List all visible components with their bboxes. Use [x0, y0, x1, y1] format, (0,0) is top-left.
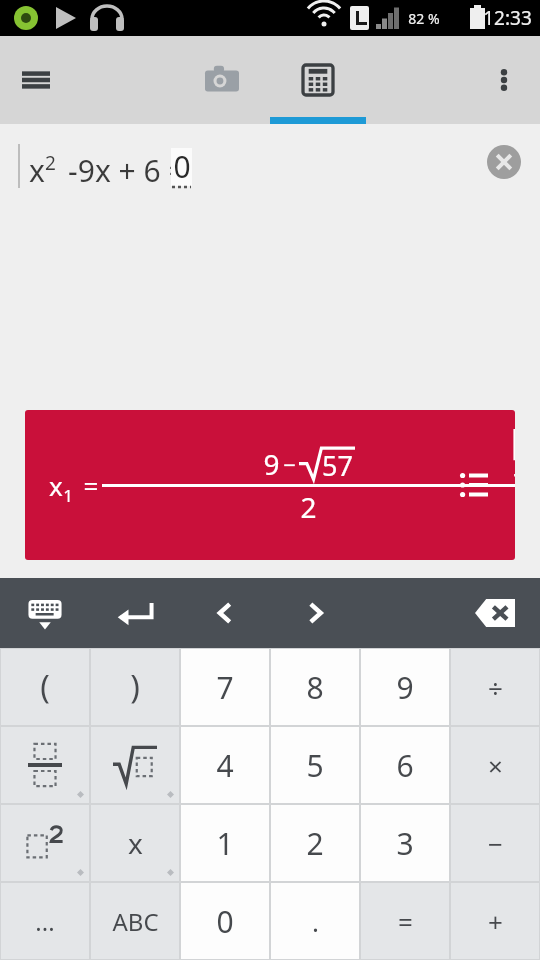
staticText: 2: [300, 488, 317, 526]
staticText: −: [488, 826, 503, 861]
button[interactable]: 0: [181, 883, 269, 959]
staticText: −: [283, 449, 296, 479]
button[interactable]: +: [451, 883, 539, 959]
staticText: 1: [63, 484, 73, 507]
staticText: ): [130, 665, 140, 709]
button[interactable]: Clear: [476, 134, 532, 190]
button[interactable]: 1: [181, 805, 269, 881]
button[interactable]: 4: [181, 727, 269, 803]
button[interactable]: Backspace: [466, 584, 524, 642]
button[interactable]: [91, 727, 179, 803]
button[interactable]: ×: [451, 727, 539, 803]
button[interactable]: ABC: [91, 883, 179, 959]
button[interactable]: [1, 727, 89, 803]
staticText: 3: [396, 823, 414, 864]
staticText: 57: [322, 447, 353, 484]
button[interactable]: 2: [271, 805, 359, 881]
staticText: 0: [216, 901, 234, 942]
button[interactable]: 5: [271, 727, 359, 803]
staticText: 8: [306, 667, 324, 708]
button[interactable]: Hide keyboard: [16, 584, 74, 642]
button[interactable]: Camera: [186, 44, 258, 116]
staticText: 5: [306, 745, 324, 786]
staticText: -9x + 6 =: [56, 150, 190, 191]
staticText: ...: [35, 905, 55, 938]
staticText: ABC: [112, 905, 159, 938]
staticText: 82 %: [408, 9, 440, 28]
button[interactable]: ...: [1, 883, 89, 959]
button[interactable]: 6: [361, 727, 449, 803]
button[interactable]: More options: [468, 44, 540, 116]
staticText: 2: [45, 150, 56, 176]
button[interactable]: .: [271, 883, 359, 959]
button[interactable]: 8: [271, 649, 359, 725]
staticText: =: [398, 904, 413, 939]
staticText: 6: [396, 745, 414, 786]
button[interactable]: Move left: [196, 584, 254, 642]
staticText: x: [49, 468, 63, 503]
staticText: .: [312, 904, 319, 939]
button[interactable]: x: [91, 805, 179, 881]
staticText: 12:33: [483, 5, 532, 31]
staticText: x: [128, 824, 143, 862]
staticText: =: [73, 468, 102, 503]
staticText: 4: [216, 745, 234, 786]
button[interactable]: Enter: [106, 584, 164, 642]
button[interactable]: [1, 805, 89, 881]
button[interactable]: (: [1, 649, 89, 725]
button[interactable]: ÷: [451, 649, 539, 725]
staticText: 9: [396, 667, 414, 708]
button[interactable]: Show steps: [447, 458, 501, 512]
button[interactable]: Menu: [0, 44, 72, 116]
staticText: 1: [216, 823, 234, 864]
button[interactable]: ): [91, 649, 179, 725]
button[interactable]: x: [25, 410, 515, 560]
button[interactable]: 7: [181, 649, 269, 725]
button[interactable]: Move right: [286, 584, 344, 642]
staticText: 9: [263, 445, 280, 483]
staticText: 0: [173, 146, 191, 187]
staticText: ×: [488, 748, 503, 783]
staticText: x: [29, 150, 45, 191]
button[interactable]: Calculator: [282, 44, 354, 116]
button[interactable]: 9: [361, 649, 449, 725]
staticText: +: [488, 904, 503, 939]
button[interactable]: 3: [361, 805, 449, 881]
button[interactable]: −: [451, 805, 539, 881]
staticText: (: [40, 665, 50, 709]
staticText: ÷: [488, 670, 503, 705]
button[interactable]: =: [361, 883, 449, 959]
staticText: 2: [306, 823, 324, 864]
staticText: 7: [216, 667, 234, 708]
